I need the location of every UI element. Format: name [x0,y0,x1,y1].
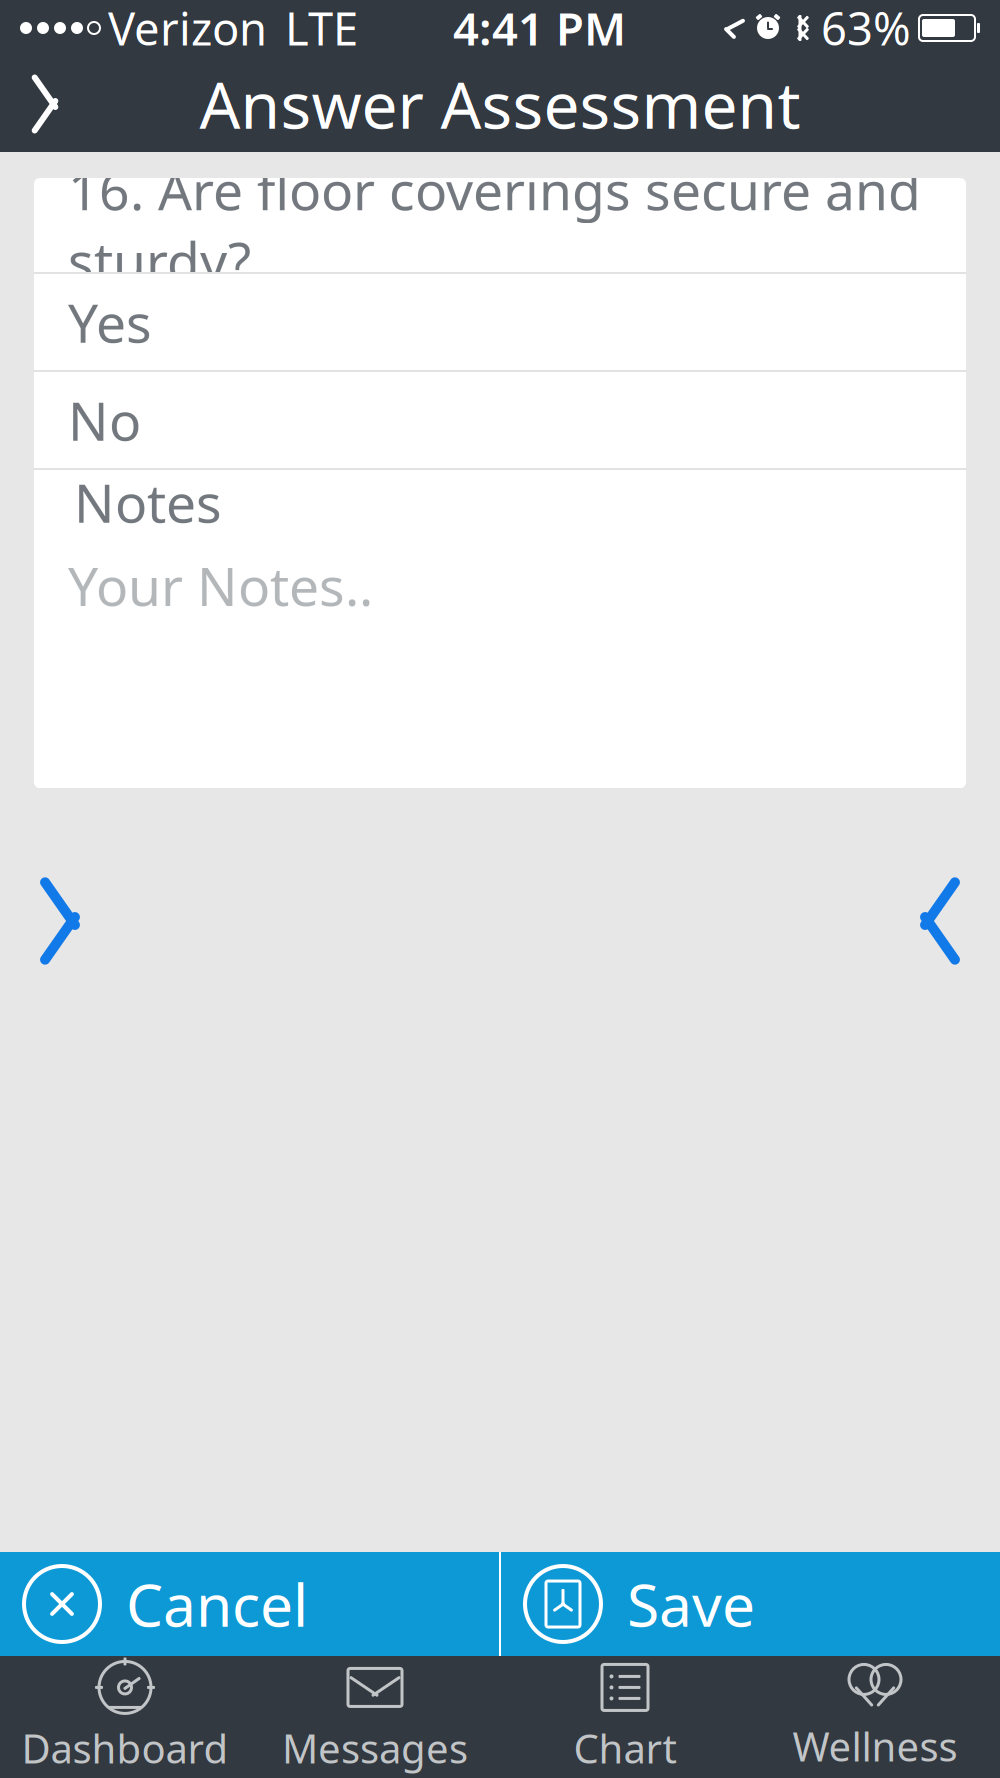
button[interactable]: Previous question [0,856,120,986]
staticText: Wellness [792,1719,957,1772]
button[interactable]: Chart [500,1656,750,1778]
button[interactable]: Your Notes.. [34,534,966,788]
button[interactable]: No [34,372,966,468]
staticText: Chart [573,1721,676,1774]
staticText: Save [627,1565,755,1643]
button[interactable]: Back [0,56,90,152]
staticText: 4:41 PM [453,0,626,58]
button[interactable]: Messages [250,1656,500,1778]
staticText: Answer Assessment [199,61,800,146]
staticText: Your Notes.. [68,550,373,621]
staticText: 63% [821,0,911,58]
staticText: Notes [74,467,222,537]
staticText: Yes [68,287,152,357]
button[interactable]: Dashboard [0,1656,250,1778]
button[interactable]: Yes [34,274,966,370]
staticText: Dashboard [21,1721,228,1774]
button[interactable]: Save [501,1552,1000,1656]
button[interactable]: Wellness [750,1656,1000,1778]
staticText: Cancel [126,1565,308,1643]
button[interactable]: Cancel [0,1552,499,1656]
staticText: Verizon [108,0,267,58]
staticText: No [68,385,141,455]
button[interactable]: Next question [880,856,1000,986]
staticText: Messages [282,1721,468,1774]
staticText: 16. Are floor coverings secure and sturd… [68,154,921,296]
staticText: LTE [285,0,358,58]
